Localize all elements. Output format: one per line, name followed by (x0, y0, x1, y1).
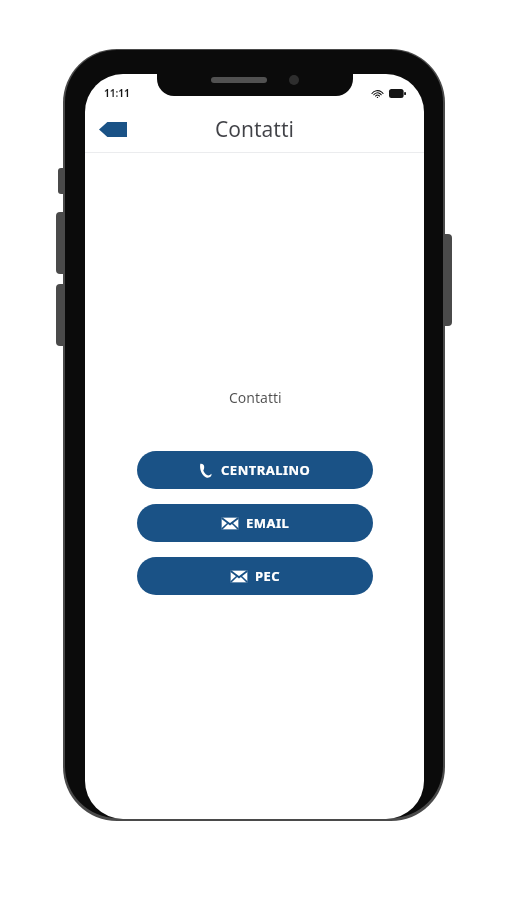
staticText: PEC (255, 567, 281, 585)
staticText: Contatti (229, 388, 282, 407)
button[interactable]: PEC (137, 557, 373, 595)
button[interactable]: Indietro (91, 111, 135, 147)
button[interactable]: CENTRALINO (137, 451, 373, 489)
button[interactable]: EMAIL (137, 504, 373, 542)
staticText: EMAIL (246, 514, 290, 532)
staticText: CENTRALINO (221, 461, 311, 479)
staticText: Contatti (215, 115, 294, 144)
staticText: 11:11 (104, 86, 130, 100)
